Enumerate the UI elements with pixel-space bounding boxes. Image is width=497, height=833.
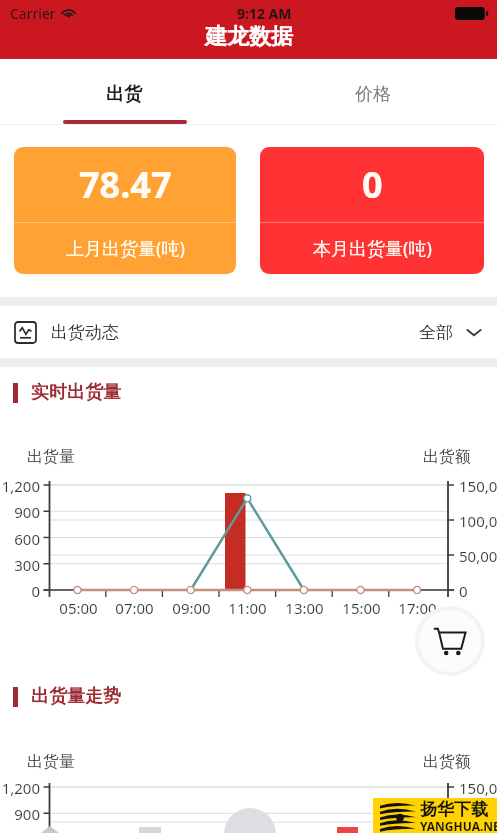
staticText: 出货量: [27, 447, 75, 467]
button[interactable]: 出货: [0, 67, 248, 121]
staticText: 出货量: [27, 752, 75, 772]
staticText: 实时出货量: [31, 381, 121, 404]
staticText: 900: [14, 804, 40, 824]
staticText: 建龙数据: [205, 23, 293, 51]
button[interactable]: 0: [260, 147, 484, 274]
staticText: 本月出货量(吨): [313, 236, 432, 261]
button[interactable]: 价格: [248, 67, 497, 121]
staticText: 100,0: [459, 511, 497, 531]
staticText: 50,00: [459, 546, 497, 566]
staticText: 600: [14, 529, 40, 549]
button[interactable]: 出货动态: [14, 306, 483, 358]
staticText: 上月出货量(吨): [66, 236, 185, 261]
button[interactable]: 78.47: [14, 147, 236, 274]
staticText: 出货额: [423, 447, 471, 467]
staticText: 15:00: [342, 598, 381, 618]
staticText: 0: [31, 581, 40, 601]
staticText: Carrier: [10, 4, 56, 23]
staticText: 0: [459, 581, 468, 601]
staticText: 07:00: [115, 598, 154, 618]
staticText: 150,0: [459, 476, 497, 496]
staticText: 900: [14, 502, 40, 522]
staticText: 出货额: [423, 752, 471, 772]
staticText: 9:12 AM: [237, 4, 292, 23]
staticText: YANGHUA.NET: [420, 818, 497, 833]
staticText: 150,0: [459, 778, 497, 798]
staticText: 扬华下载: [420, 799, 488, 820]
staticText: 出货量走势: [31, 685, 121, 708]
staticText: 17:00: [398, 598, 437, 618]
staticText: 全部: [419, 322, 453, 343]
staticText: 0: [362, 160, 383, 209]
staticText: 出货动态: [51, 322, 119, 343]
button[interactable]: Shopping cart: [415, 606, 485, 676]
staticText: 09:00: [172, 598, 211, 618]
staticText: 78.47: [79, 160, 172, 209]
staticText: 11:00: [228, 598, 267, 618]
staticText: 13:00: [285, 598, 324, 618]
staticText: 价格: [355, 83, 391, 106]
staticText: 1,200: [1, 778, 40, 798]
staticText: 出货: [106, 83, 142, 106]
staticText: 1,200: [1, 476, 40, 496]
staticText: 300: [14, 555, 40, 575]
staticText: 05:00: [59, 598, 98, 618]
